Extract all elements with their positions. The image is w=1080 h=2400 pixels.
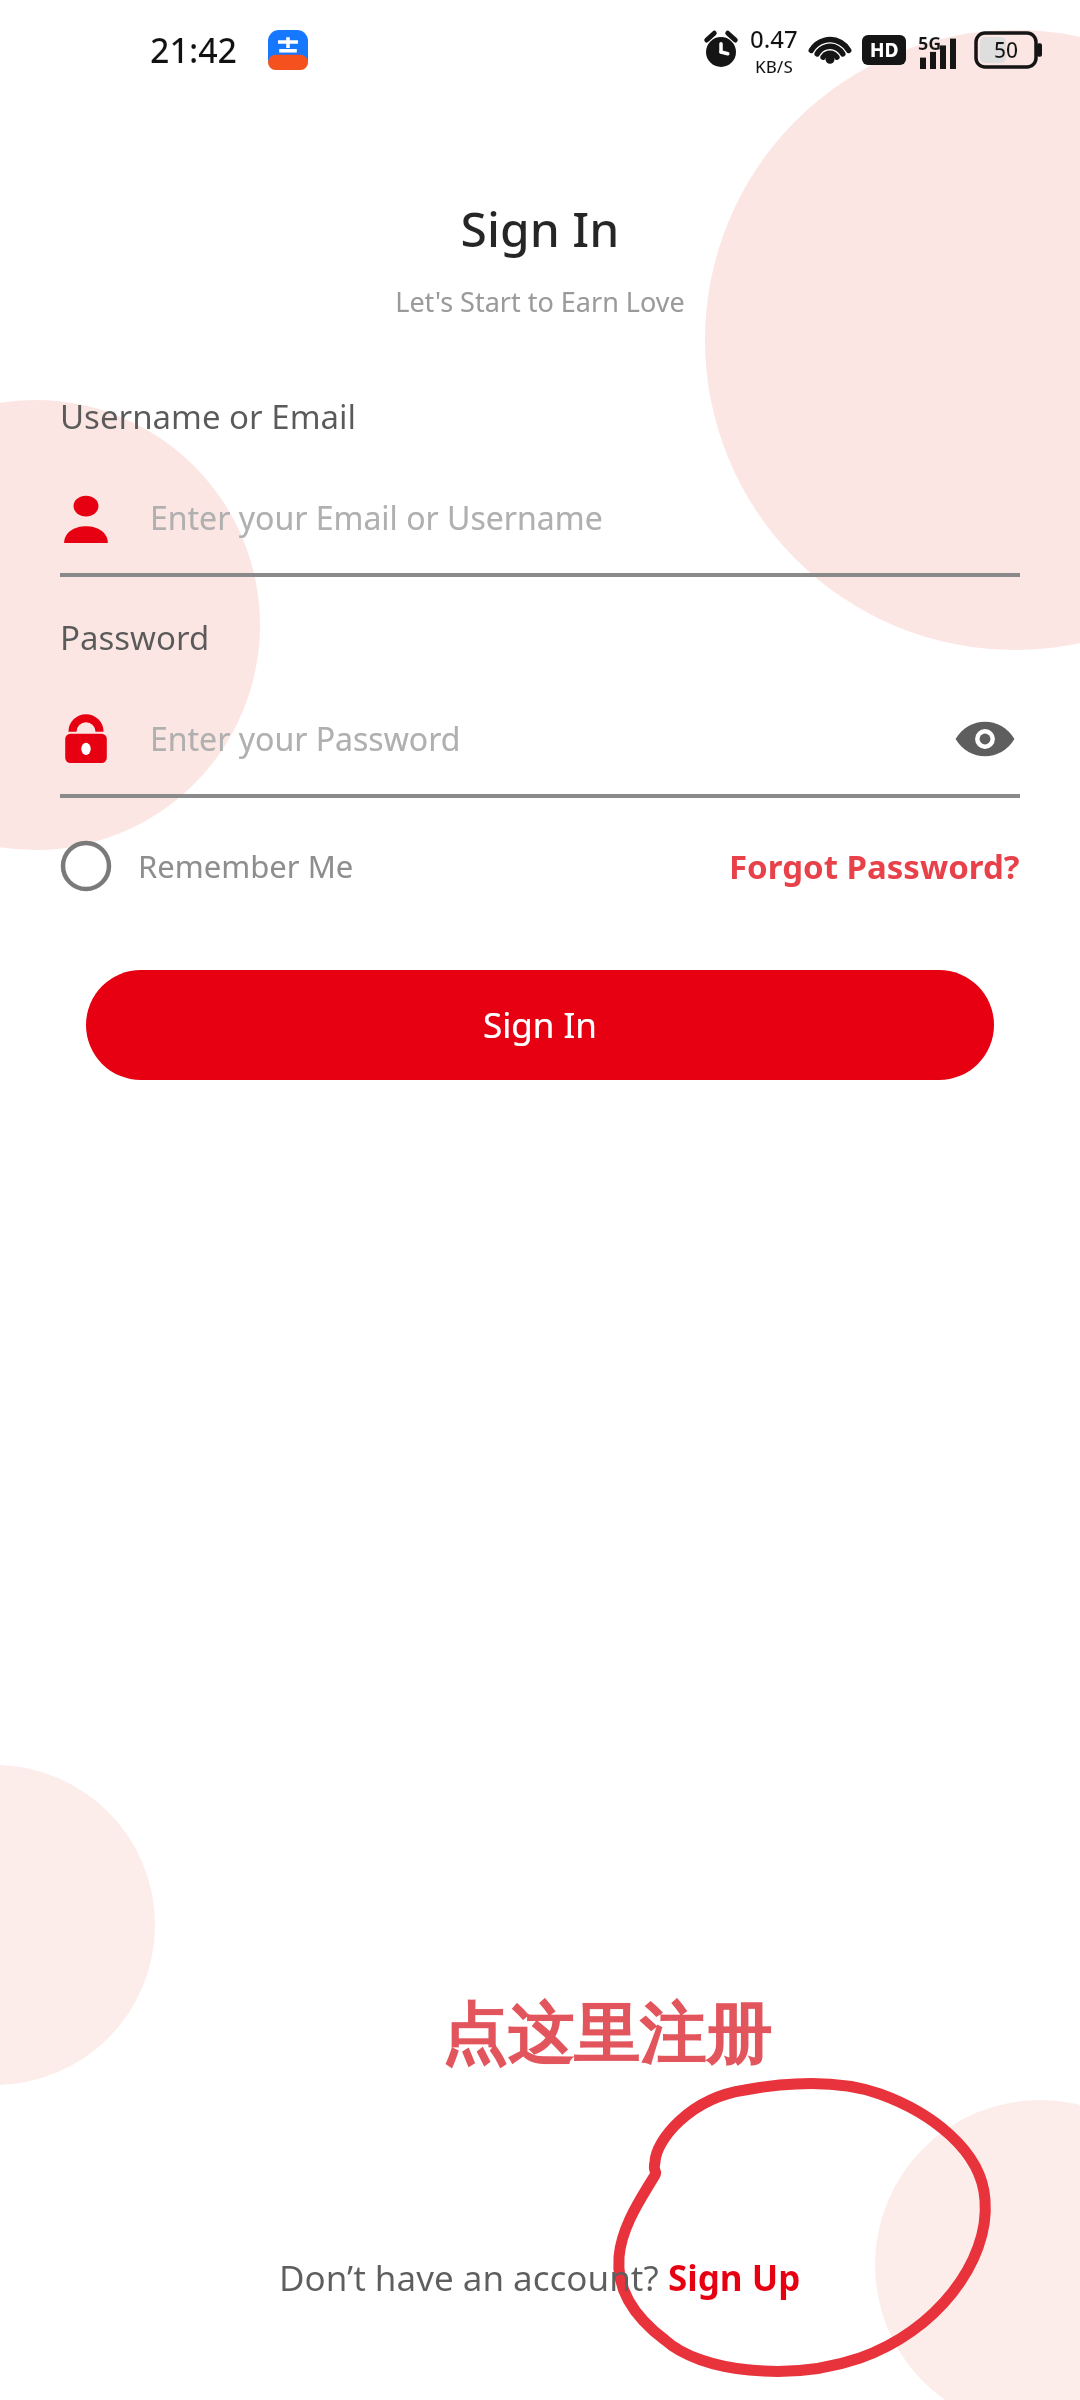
staticText: Username or Email — [60, 394, 357, 439]
staticText: 5G — [918, 31, 942, 56]
staticText: HD — [870, 37, 899, 63]
button[interactable]: Show password — [950, 704, 1020, 774]
button[interactable]: Enter your Password — [60, 704, 950, 774]
staticText: Enter your Password — [150, 717, 461, 761]
button[interactable]: Forgot Password? — [729, 844, 1020, 889]
staticText: Forgot Password? — [729, 844, 1020, 889]
button[interactable]: Remember Me — [60, 840, 354, 892]
staticText: 点这里注册 — [441, 1993, 771, 2076]
staticText: Don’t have an account? — [279, 2254, 668, 2302]
staticText: KB/S — [755, 55, 793, 78]
staticText: Sign Up — [668, 2254, 801, 2302]
staticText: 0.47 — [750, 22, 798, 55]
staticText: Remember Me — [138, 845, 354, 887]
button[interactable]: Sign Up — [668, 2254, 801, 2302]
staticText: Password — [60, 615, 210, 660]
staticText: Sign In — [483, 1001, 597, 1049]
staticText: Sign In — [0, 196, 1080, 261]
button[interactable]: Enter your Email or Username — [60, 483, 1020, 553]
staticText: 50 — [994, 36, 1019, 65]
staticText: Let's Start to Earn Love — [0, 283, 1080, 320]
staticText: 21:42 — [150, 27, 238, 73]
staticText: Enter your Email or Username — [150, 496, 603, 540]
button[interactable]: Sign In — [86, 970, 994, 1080]
